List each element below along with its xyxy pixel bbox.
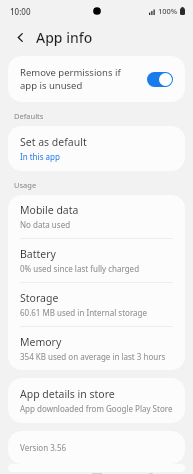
- button[interactable]: Memory: [8, 326, 185, 370]
- staticText: App info: [36, 28, 93, 47]
- button[interactable]: App details in store: [8, 378, 185, 423]
- button[interactable]: Back: [10, 27, 30, 47]
- button[interactable]: Remove permissions if app is unused: [8, 56, 185, 102]
- staticText: App downloaded from Google Play Store: [20, 403, 173, 414]
- button[interactable]: Remove permissions toggle: [147, 72, 173, 87]
- staticText: Mobile data: [20, 203, 79, 217]
- staticText: 354 KB used on average in last 3 hours: [20, 351, 166, 362]
- staticText: Battery: [20, 247, 56, 261]
- staticText: Storage: [20, 291, 59, 305]
- button[interactable]: Storage: [8, 282, 185, 326]
- staticText: 100%: [158, 6, 178, 16]
- staticText: Remove permissions if app is unused: [20, 66, 139, 92]
- staticText: Set as default: [20, 135, 87, 149]
- staticText: In this app: [20, 151, 60, 162]
- staticText: 60.61 MB used in Internal storage: [20, 307, 147, 318]
- staticText: Version 3.56: [20, 442, 67, 453]
- staticText: Usage: [14, 180, 37, 190]
- staticText: Defaults: [14, 111, 44, 121]
- staticText: 10:00: [10, 6, 31, 17]
- button[interactable]: Mobile data: [8, 195, 185, 238]
- button[interactable]: Set as default: [8, 126, 185, 171]
- staticText: No data used: [20, 219, 71, 230]
- staticText: 0% used since last fully charged: [20, 263, 140, 274]
- staticText: App details in store: [20, 387, 115, 401]
- button[interactable]: Battery: [8, 238, 185, 282]
- staticText: Memory: [20, 335, 62, 349]
